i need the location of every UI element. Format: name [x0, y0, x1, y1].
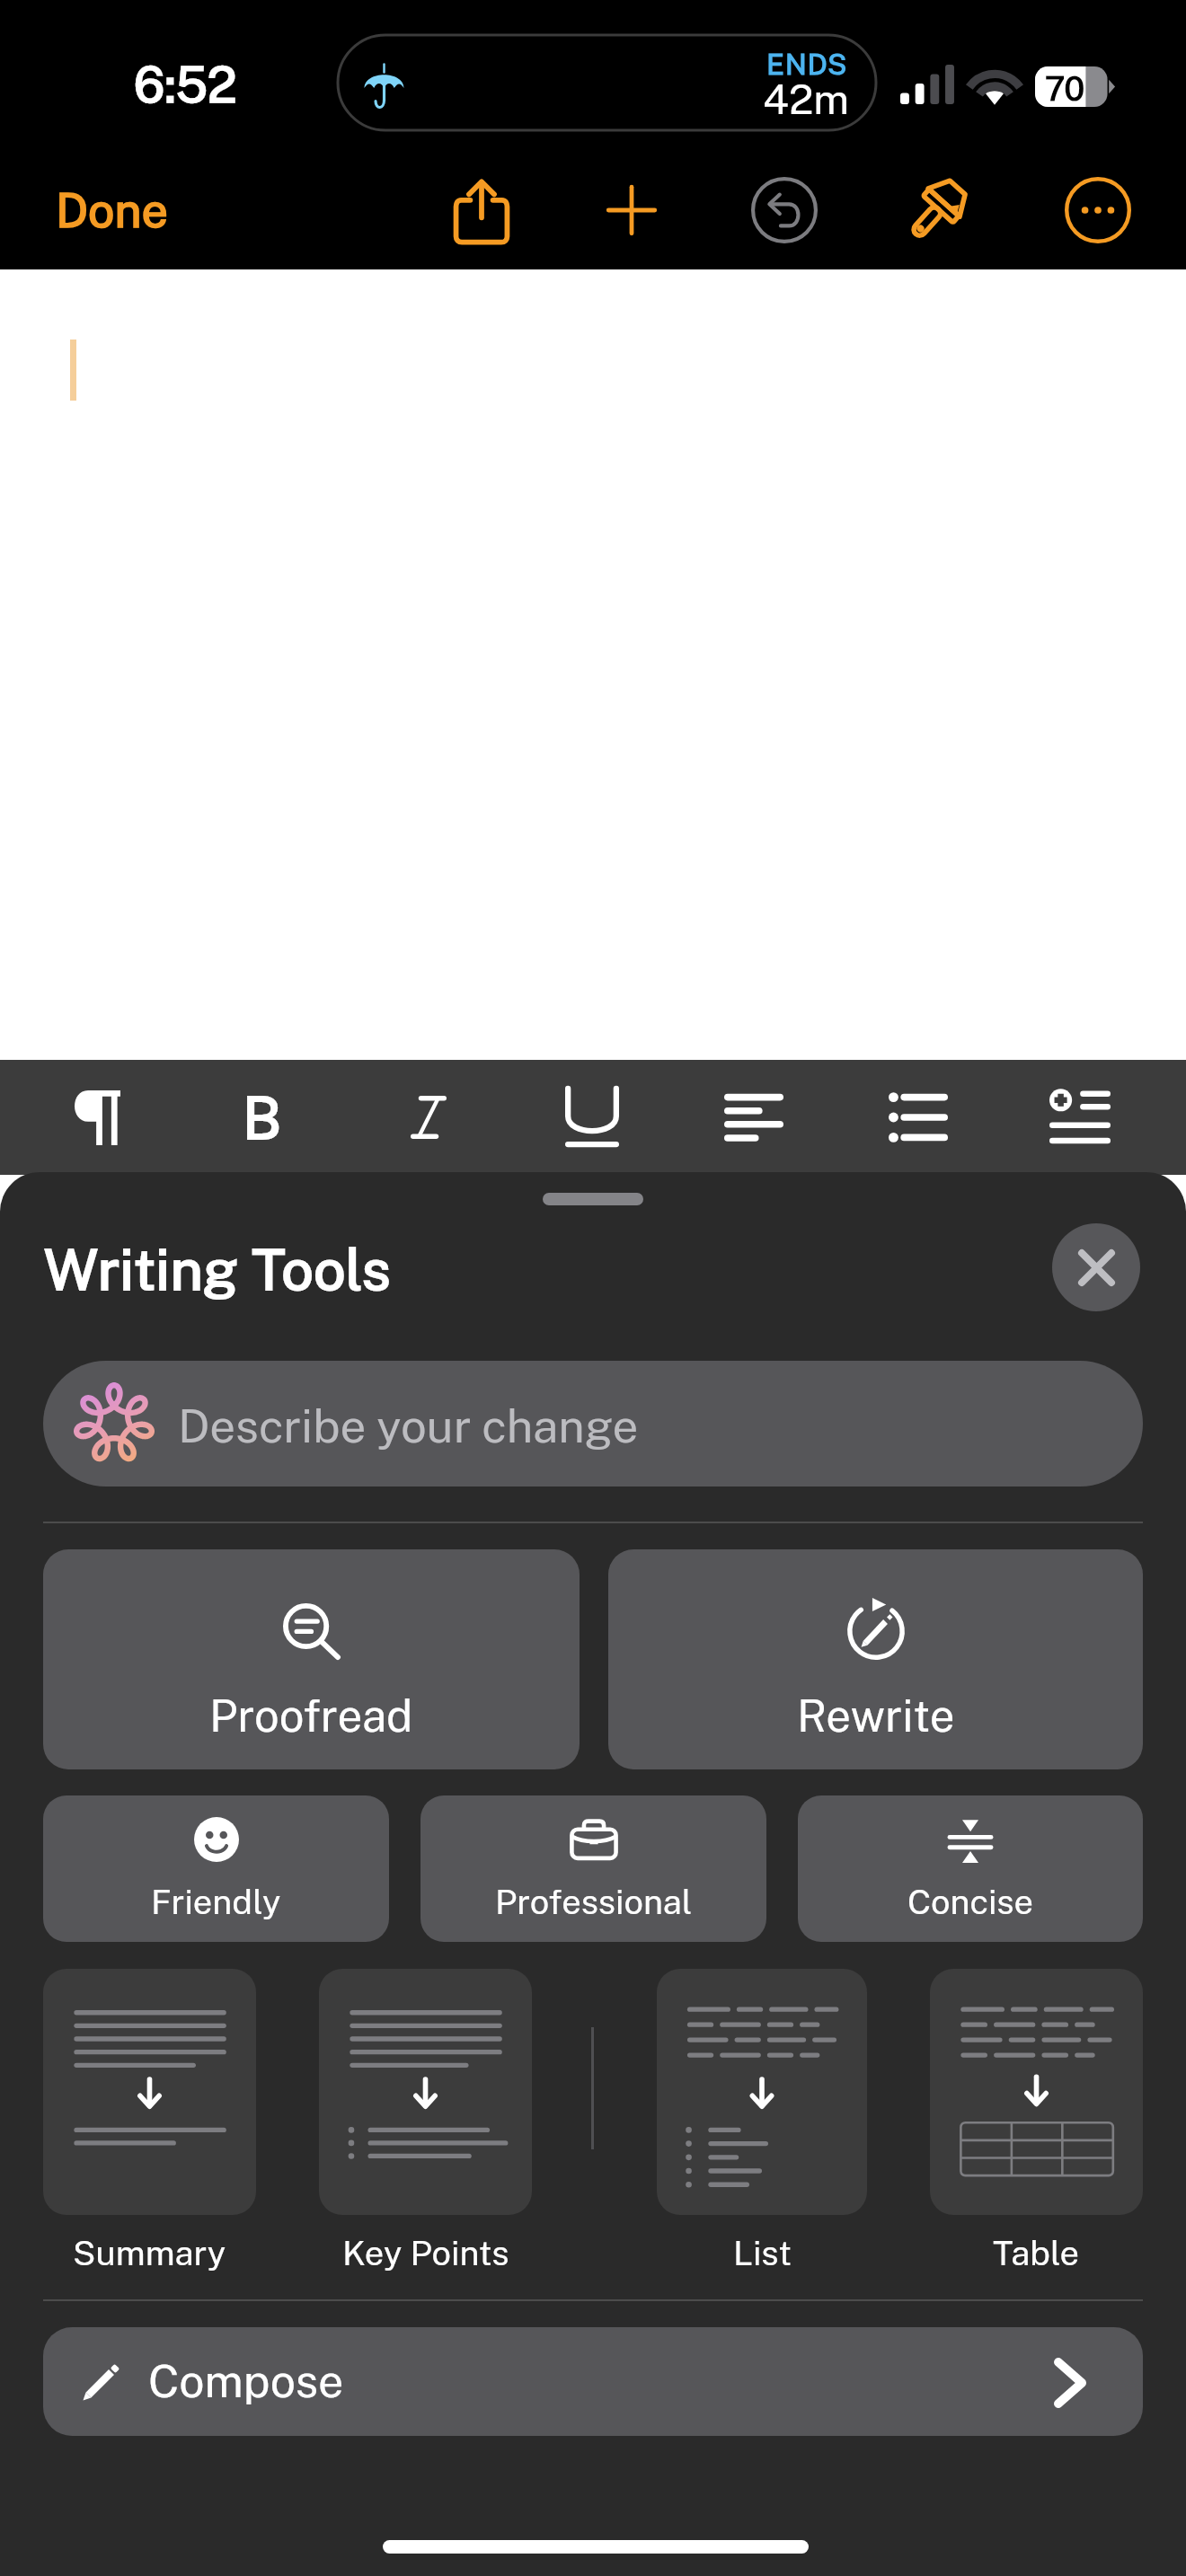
staticText: Describe your change: [178, 1399, 639, 1453]
button[interactable]: B: [208, 1060, 315, 1175]
staticText: ENDS: [766, 48, 848, 82]
button[interactable]: Proofread: [43, 1549, 580, 1769]
button[interactable]: Undo: [730, 151, 838, 269]
button[interactable]: Professional: [420, 1795, 766, 1942]
staticText: Compose: [148, 2354, 344, 2407]
staticText: Proofread: [209, 1689, 413, 1742]
button[interactable]: Describe your change: [43, 1361, 1143, 1486]
staticText: Key Points: [342, 2233, 509, 2273]
button[interactable]: [319, 1969, 532, 2215]
staticText: 70: [1045, 69, 1085, 108]
button[interactable]: Align left: [700, 1060, 808, 1175]
staticText: Professional: [495, 1882, 693, 1922]
button[interactable]: Rewrite: [608, 1549, 1143, 1769]
staticText: Writing Tools: [44, 1236, 391, 1302]
staticText: Rewrite: [797, 1689, 955, 1742]
button[interactable]: Indent list: [1026, 1060, 1134, 1175]
button[interactable]: Concise: [798, 1795, 1143, 1942]
button[interactable]: Share: [428, 151, 535, 269]
button[interactable]: Compose: [43, 2327, 1143, 2436]
button[interactable]: Formatting: [883, 151, 991, 269]
button[interactable]: [43, 1969, 256, 2215]
staticText: B: [243, 1084, 281, 1151]
button[interactable]: Close: [1052, 1223, 1140, 1311]
button[interactable]: Underline: [538, 1060, 646, 1175]
staticText: List: [733, 2233, 792, 2273]
button[interactable]: Italic: [375, 1060, 482, 1175]
staticText: Concise: [907, 1882, 1034, 1922]
button[interactable]: Add: [578, 151, 686, 269]
button[interactable]: [930, 1969, 1143, 2215]
button[interactable]: Bulleted list: [864, 1060, 972, 1175]
staticText: Done: [56, 183, 168, 238]
staticText: Table: [993, 2233, 1080, 2273]
button[interactable]: More options: [1044, 151, 1152, 269]
button[interactable]: Friendly: [43, 1795, 389, 1942]
staticText: 6:52: [134, 56, 237, 114]
button[interactable]: Done: [31, 151, 192, 269]
button[interactable]: [657, 1969, 867, 2215]
button[interactable]: Paragraph style: [44, 1060, 152, 1175]
staticText: Summary: [73, 2233, 226, 2273]
staticText: 42m: [763, 75, 850, 123]
staticText: Friendly: [151, 1882, 281, 1922]
